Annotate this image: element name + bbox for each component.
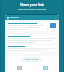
staticText: Send your form to anyone <box>0 8 64 11</box>
button[interactable] <box>7 64 31 72</box>
staticText: Share your link <box>25 58 39 61</box>
button[interactable] <box>7 35 57 44</box>
button[interactable] <box>49 22 57 33</box>
button[interactable]: Menu <box>7 17 9 19</box>
button[interactable] <box>7 45 57 52</box>
button[interactable]: More options <box>55 17 57 19</box>
button[interactable]: Share your link <box>22 57 42 62</box>
button[interactable] <box>33 64 57 72</box>
staticText: Share your link <box>0 3 64 7</box>
button[interactable]: Menu <box>5 15 59 20</box>
button[interactable] <box>7 22 47 31</box>
